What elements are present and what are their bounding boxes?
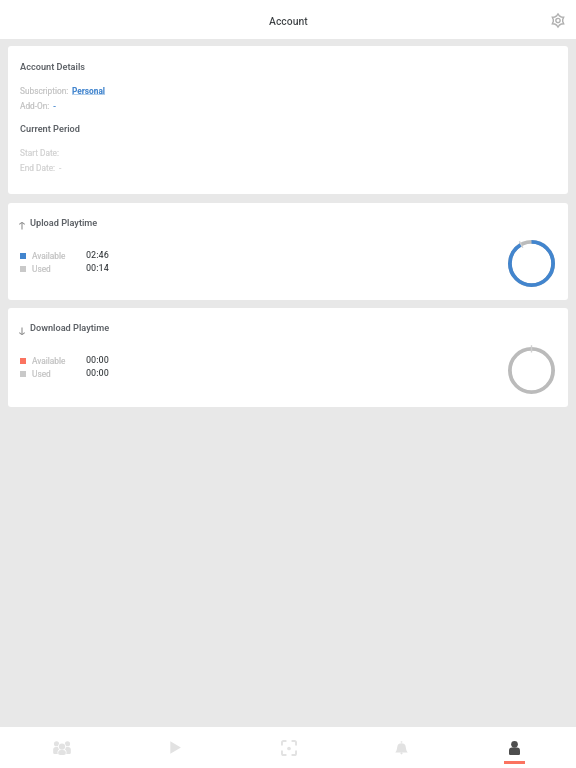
staticText: Available [32, 251, 66, 261]
button[interactable]: Personal [72, 86, 106, 96]
staticText: - [59, 163, 62, 173]
staticText: Used [32, 369, 51, 379]
button[interactable]: Contacts [5, 727, 119, 768]
button[interactable]: Settings [544, 6, 572, 34]
staticText: Add-On: [20, 101, 50, 111]
staticText: 00:00 [86, 355, 109, 366]
staticText: Start Date: [20, 148, 60, 158]
staticText: Used [32, 264, 51, 274]
staticText: End Date: [20, 163, 56, 173]
staticText: 00:14 [86, 263, 109, 274]
button[interactable]: Notifications [345, 727, 458, 768]
staticText: 02:46 [86, 250, 109, 261]
staticText: Current Period [20, 123, 80, 134]
button[interactable]: Account [458, 727, 571, 768]
button[interactable]: Play [119, 727, 232, 768]
staticText: 00:00 [86, 368, 109, 379]
staticText: Account [269, 15, 308, 27]
staticText: Upload Playtime [30, 217, 98, 228]
button[interactable]: Scan [232, 727, 345, 768]
staticText: Available [32, 356, 66, 366]
staticText: Download Playtime [30, 322, 110, 333]
staticText: Account Details [20, 61, 85, 72]
staticText: Subscription: [20, 86, 69, 96]
staticText: - [53, 102, 57, 111]
